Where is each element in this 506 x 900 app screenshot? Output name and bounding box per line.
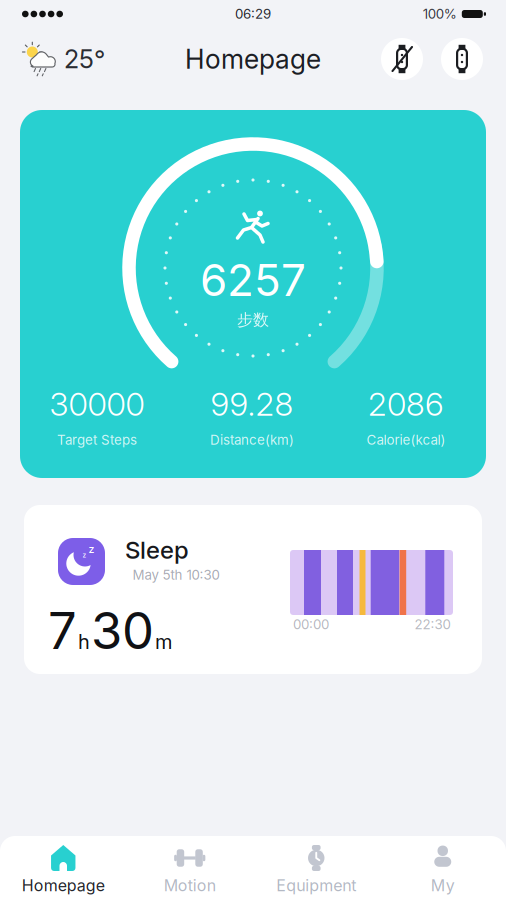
button[interactable]: Motion <box>126 844 253 895</box>
staticText: 2086 <box>368 385 444 423</box>
staticText: Equipment <box>276 876 356 895</box>
staticText: m <box>155 630 172 653</box>
staticText: 100% <box>423 6 457 22</box>
button[interactable]: Body sensor off <box>381 38 423 80</box>
staticText: 30 <box>91 601 154 660</box>
staticText: Motion <box>164 876 216 895</box>
staticText: Target Steps <box>57 432 137 448</box>
staticText: Distance(km) <box>210 432 294 448</box>
staticText: 99.28 <box>210 385 293 423</box>
staticText: Homepage <box>185 43 321 75</box>
staticText: 6257 <box>200 254 306 306</box>
button[interactable]: Equipment <box>253 844 379 895</box>
staticText: Sleep <box>125 536 189 564</box>
staticText: Calorie(kcal) <box>366 432 445 448</box>
staticText: 06:29 <box>235 6 271 22</box>
button[interactable]: Homepage <box>0 844 126 895</box>
staticText: h <box>78 630 90 653</box>
staticText: 00:00 <box>293 617 329 632</box>
button[interactable]: My <box>379 844 506 895</box>
staticText: Homepage <box>22 876 105 895</box>
staticText: My <box>431 876 455 895</box>
button[interactable]: z <box>24 505 482 674</box>
staticText: z <box>88 543 94 555</box>
button[interactable]: Wearable device <box>441 38 483 80</box>
staticText: 步数 <box>237 310 269 330</box>
staticText: 25° <box>64 44 105 74</box>
staticText: z <box>82 551 86 559</box>
staticText: 7 <box>48 601 77 660</box>
staticText: 22:30 <box>414 617 450 632</box>
staticText: May 5th 10:30 <box>132 567 219 583</box>
staticText: 30000 <box>49 385 144 423</box>
